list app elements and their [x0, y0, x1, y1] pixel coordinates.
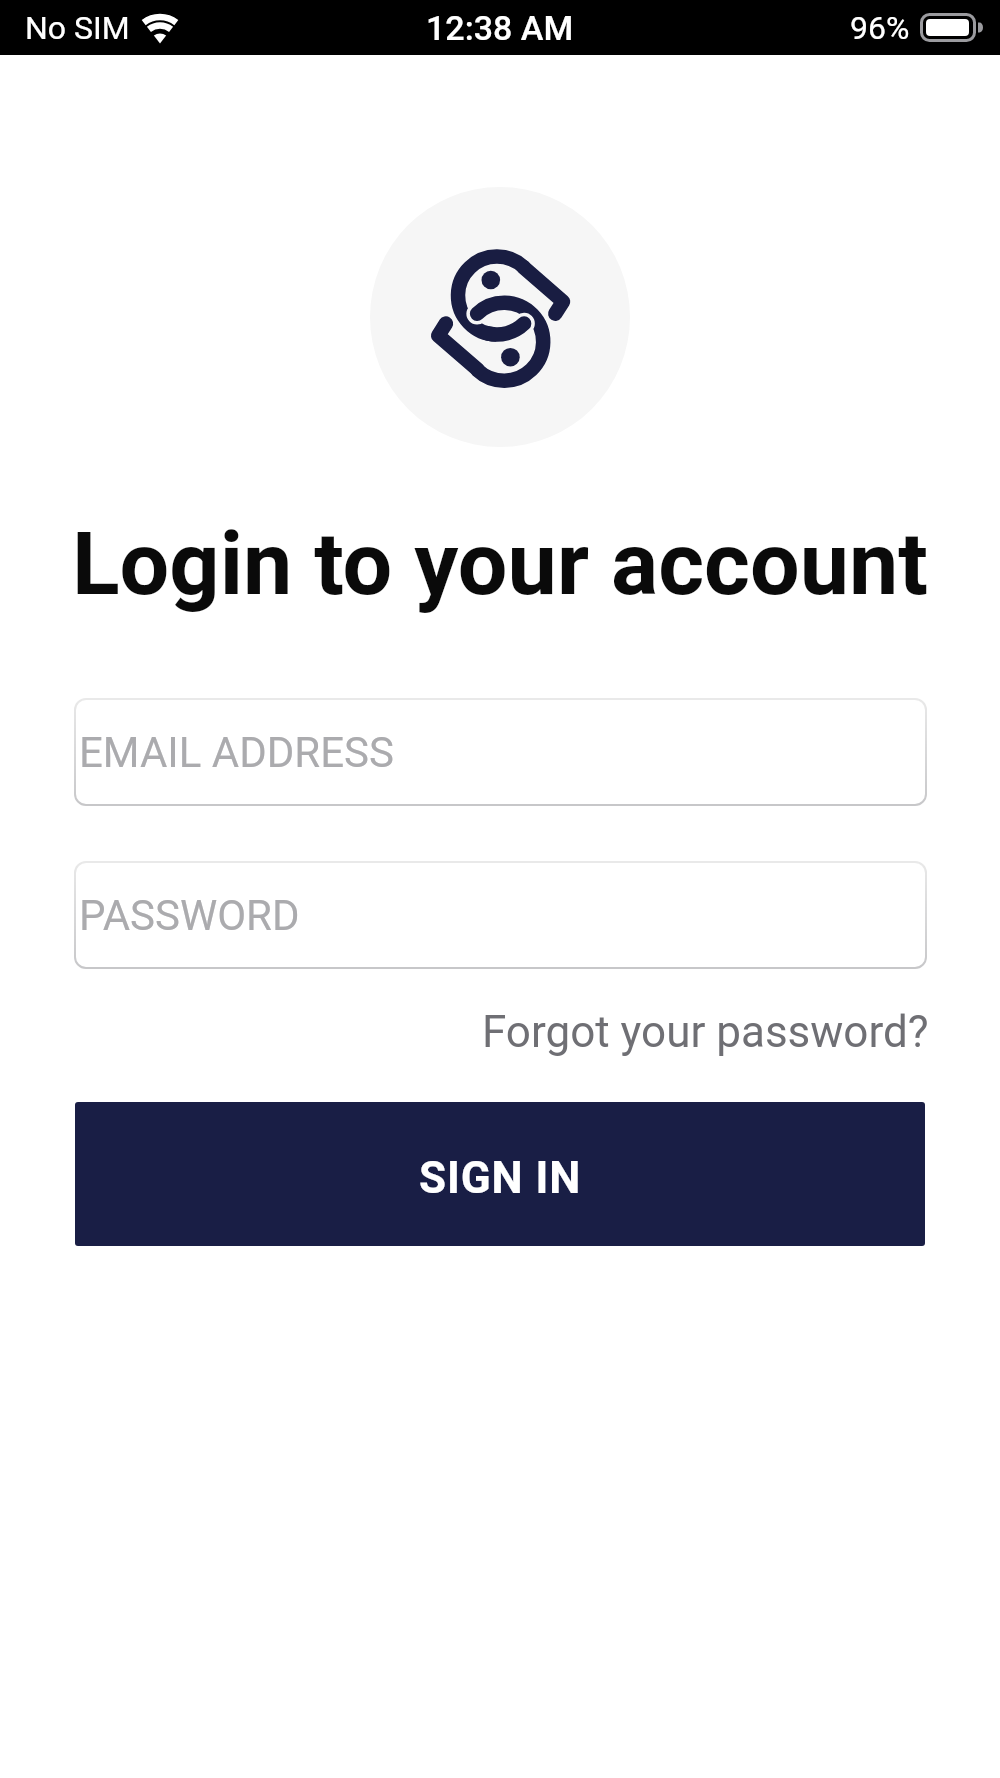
staticText: EMAIL ADDRESS	[79, 728, 394, 777]
staticText: SIGN IN	[419, 1152, 582, 1204]
staticText: Login to your account	[0, 512, 1000, 615]
staticText: 12:38 AM	[426, 8, 574, 48]
staticText: PASSWORD	[79, 891, 300, 940]
button[interactable]: EMAIL ADDRESS	[74, 698, 927, 806]
button[interactable]: Forgot your password?	[482, 1006, 929, 1058]
staticText: 96%	[850, 9, 910, 47]
button[interactable]: SIGN IN	[75, 1102, 925, 1246]
button[interactable]: PASSWORD	[74, 861, 927, 969]
staticText: No SIM	[25, 9, 130, 47]
